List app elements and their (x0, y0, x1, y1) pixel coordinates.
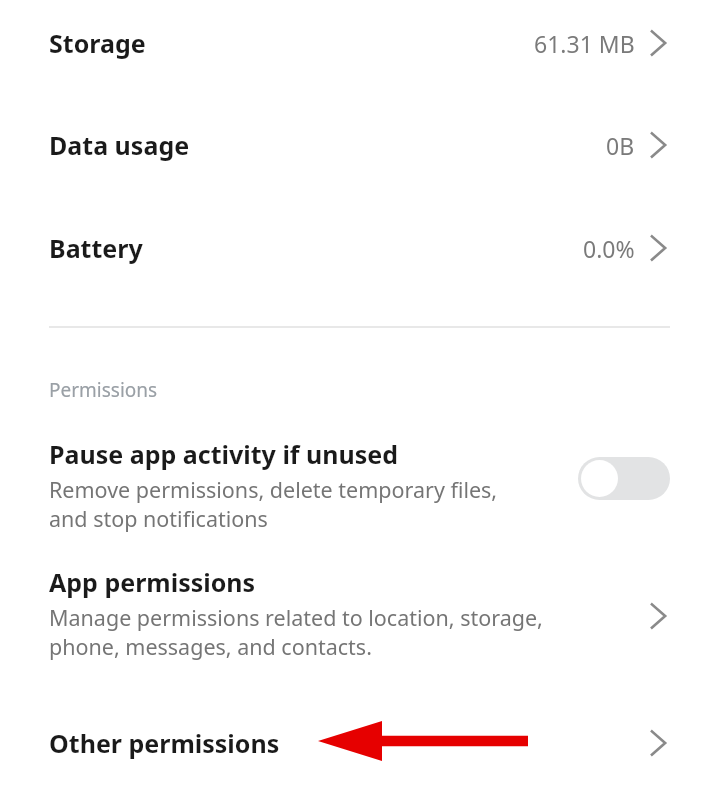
button[interactable]: Other permissions (0, 699, 717, 787)
staticText: Manage permissions related to location, … (49, 603, 607, 661)
staticText: Battery (49, 231, 143, 265)
button[interactable]: Storage (0, 0, 717, 86)
button[interactable]: Pause app activity if unused (0, 437, 717, 547)
staticText: Data usage (49, 128, 190, 162)
staticText: App permissions (49, 565, 256, 599)
button[interactable]: App permissions (0, 565, 717, 683)
staticText: 0B (606, 130, 635, 161)
staticText: Storage (49, 26, 146, 60)
staticText: Remove permissions, delete temporary fil… (49, 475, 507, 533)
staticText: Pause app activity if unused (49, 437, 399, 471)
staticText: 0.0% (583, 233, 635, 264)
staticText: Permissions (49, 377, 158, 403)
staticText: 61.31 MB (534, 28, 635, 59)
button[interactable]: Battery (0, 205, 717, 291)
staticText: Other permissions (49, 726, 280, 760)
button[interactable]: Pause app activity toggle, off (578, 457, 670, 500)
button[interactable]: Data usage (0, 102, 717, 188)
